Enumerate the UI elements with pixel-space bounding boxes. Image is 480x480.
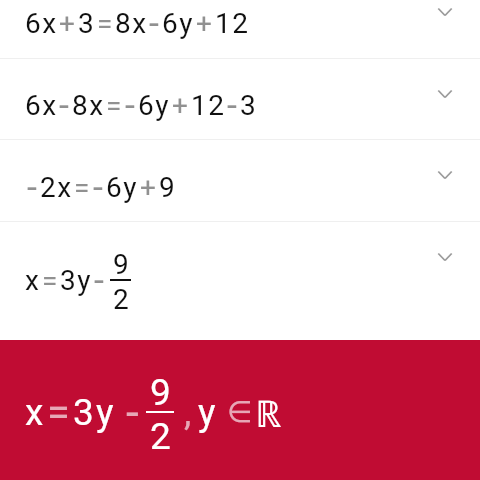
staticText: 9 <box>113 248 129 281</box>
staticText: 6y <box>162 7 195 40</box>
button[interactable]: x <box>0 222 480 340</box>
staticText: 6x <box>25 89 58 122</box>
staticText: 3 <box>240 89 258 122</box>
staticText: - <box>227 84 239 126</box>
staticText: 6y <box>138 89 171 122</box>
staticText: 3y <box>73 391 116 434</box>
staticText: + <box>140 171 158 204</box>
staticText: + <box>59 7 77 40</box>
other: Expand step <box>435 165 455 185</box>
button[interactable]: x <box>0 340 480 480</box>
staticText: 9 <box>150 371 171 414</box>
staticText: 2x <box>40 171 73 204</box>
button[interactable]: - <box>0 140 480 221</box>
staticText: = <box>74 171 91 204</box>
staticText: - <box>126 385 141 439</box>
staticText: 9 <box>159 171 177 204</box>
staticText: 8x <box>115 7 148 40</box>
staticText: - <box>93 166 105 208</box>
staticText: + <box>172 89 190 122</box>
other: Expand step <box>435 2 455 22</box>
staticText: , <box>184 391 194 434</box>
other: Expand step <box>435 84 455 104</box>
staticText: 3y <box>60 264 93 297</box>
staticText: - <box>27 166 39 208</box>
staticText: ∈ <box>227 395 255 429</box>
staticText: x <box>25 264 41 297</box>
staticText: 12 <box>215 7 250 40</box>
staticText: 2 <box>113 283 129 316</box>
staticText: x <box>25 391 46 434</box>
staticText: + <box>196 7 214 40</box>
button[interactable]: 6x <box>0 59 480 139</box>
staticText: - <box>149 2 161 44</box>
other: Expand step <box>435 247 455 267</box>
staticText: = <box>106 89 123 122</box>
staticText: = <box>47 388 72 437</box>
button[interactable]: 6x <box>0 0 480 58</box>
staticText: 3 <box>78 7 96 40</box>
staticText: = <box>42 264 59 297</box>
staticText: 6x <box>25 7 58 40</box>
staticText: y <box>198 391 218 434</box>
staticText: 12 <box>191 89 226 122</box>
staticText: ℝ <box>255 387 284 437</box>
staticText: = <box>97 7 114 40</box>
staticText: - <box>94 259 106 301</box>
staticText: 8x <box>72 89 105 122</box>
staticText: 2 <box>150 415 171 458</box>
staticText: - <box>59 84 71 126</box>
staticText: - <box>125 84 137 126</box>
staticText: 6y <box>106 171 139 204</box>
